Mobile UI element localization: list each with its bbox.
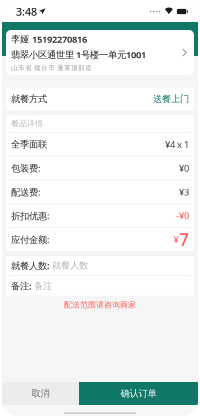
staticText: 7	[179, 228, 189, 251]
staticText: 确认订单	[120, 388, 156, 399]
staticText: 山东省 烟台市 蓬莱顶前道	[11, 64, 92, 72]
staticText: -¥0	[176, 209, 189, 222]
staticText: 包装费:	[11, 162, 41, 174]
staticText: 配送费:	[11, 186, 41, 198]
staticText: 取消	[31, 388, 49, 399]
staticText: 翡翠小区通世里 1号楼一单元1001	[11, 48, 146, 61]
staticText: ¥4 x 1	[165, 138, 189, 150]
staticText: 就餐方式	[11, 93, 47, 105]
staticText: 备注:	[11, 280, 32, 292]
staticText: 15192270816	[32, 33, 87, 45]
staticText: 就餐人数:	[11, 259, 50, 272]
staticText: 折扣优惠:	[11, 209, 50, 222]
staticText: 配送范围请咨询商家	[64, 300, 136, 310]
button[interactable]: 李娅	[6, 30, 194, 75]
button[interactable]: 确认订单	[79, 382, 198, 405]
button[interactable]: 送餐上门	[153, 93, 189, 105]
staticText: 备注	[34, 280, 52, 292]
staticText: 应付金额:	[11, 233, 50, 246]
staticText: 送餐上门	[153, 93, 189, 105]
staticText: ¥	[173, 233, 178, 246]
staticText: 李娅	[11, 33, 29, 45]
staticText: ¥3	[179, 186, 189, 198]
button[interactable]: 取消	[2, 382, 79, 405]
staticText: ¥0	[179, 162, 189, 174]
staticText: 就餐人数	[52, 260, 88, 271]
staticText: 3:48	[16, 4, 37, 19]
staticText: 全季面联	[11, 139, 47, 150]
staticText: 餐品详情	[11, 119, 43, 128]
